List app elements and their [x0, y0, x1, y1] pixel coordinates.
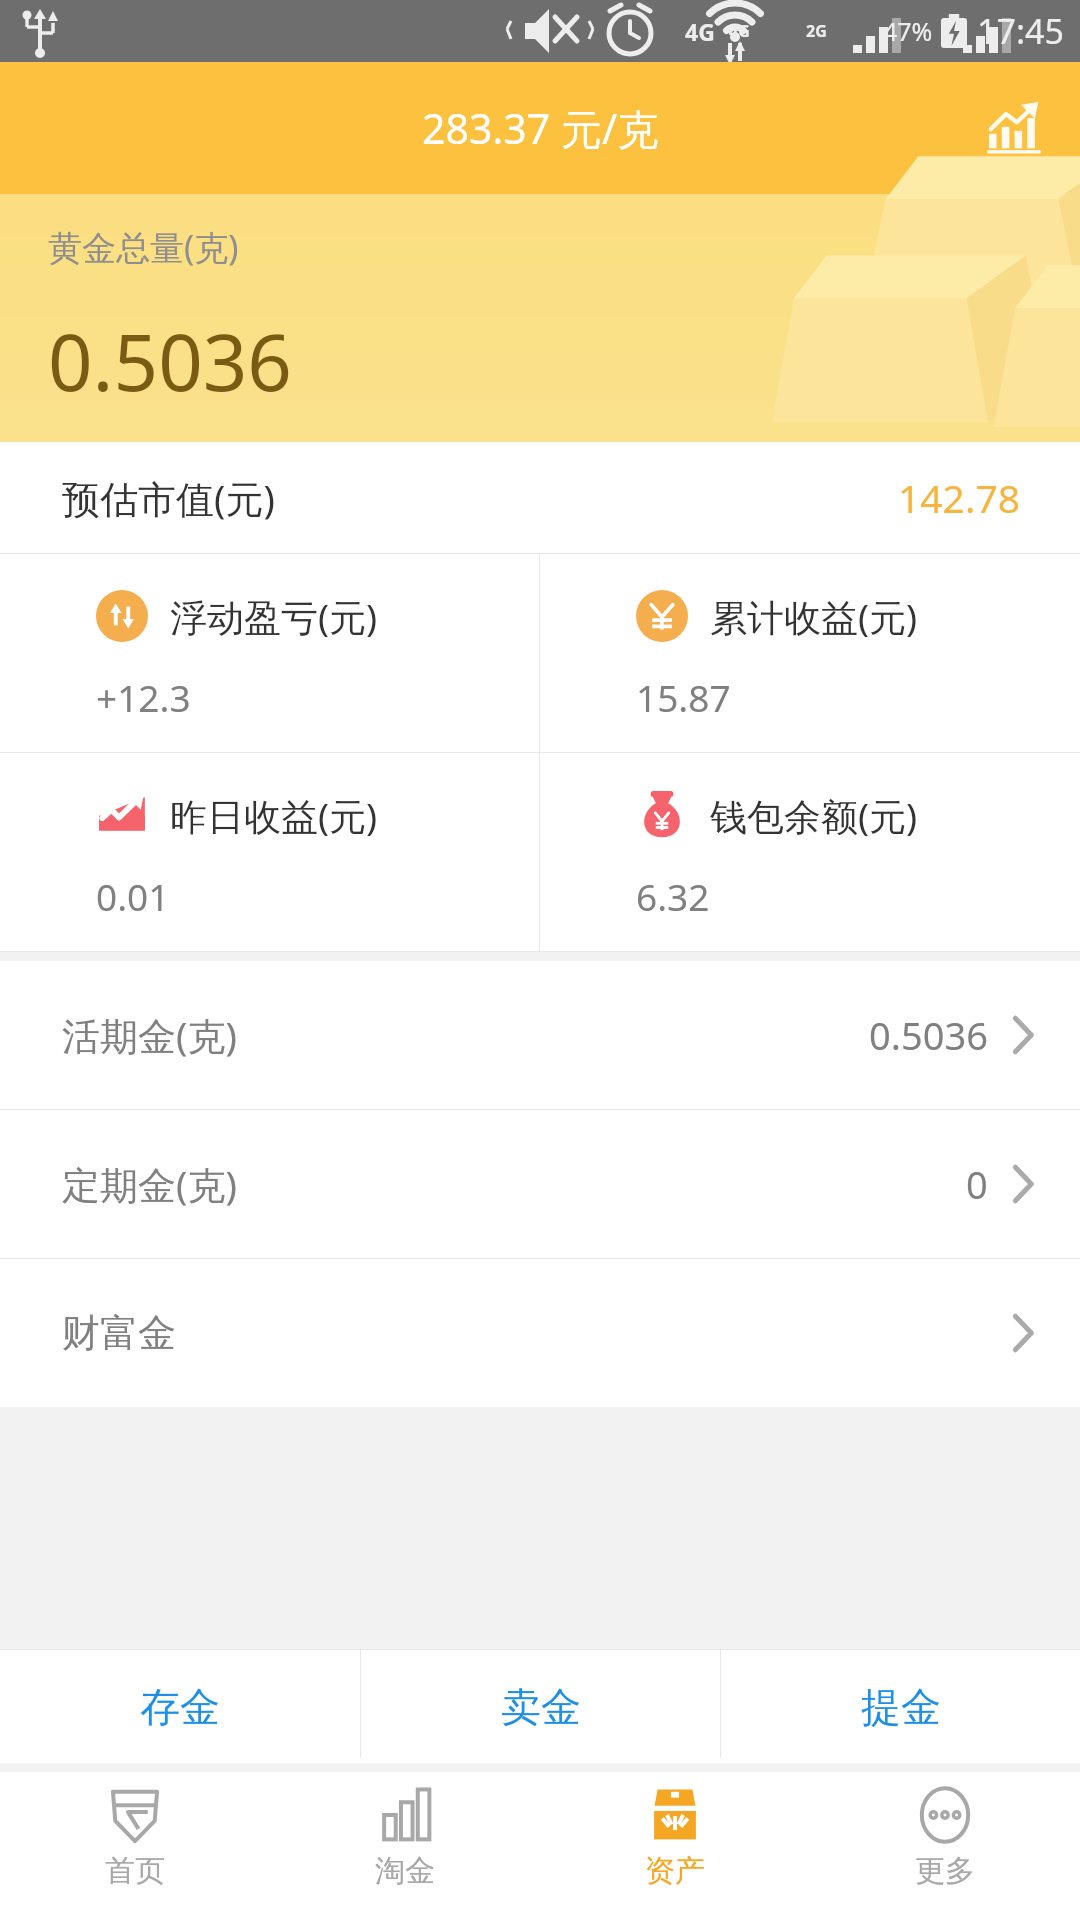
button[interactable]: 昨日收益(元) [0, 753, 539, 951]
button[interactable]: 财富金 [0, 1259, 1080, 1407]
button[interactable]: 活期金(克) [0, 961, 1080, 1109]
staticText: 4G [685, 16, 715, 47]
staticText: 财富金 [62, 1309, 176, 1357]
button[interactable]: 预估市值(元) [0, 442, 1080, 553]
staticText: 累计收益(元) [710, 591, 918, 642]
button[interactable]: 首页 [0, 1772, 270, 1920]
staticText: 6.32 [636, 871, 710, 921]
staticText: 15.87 [636, 672, 731, 722]
staticText: 4G [729, 20, 750, 42]
staticText: 0.5036 [48, 308, 292, 414]
staticText: 钱包余额(元) [710, 790, 918, 841]
staticText: 283.37 元/克 [422, 100, 659, 156]
staticText: 0.01 [96, 871, 170, 921]
staticText: 淘金 [375, 1852, 435, 1890]
staticText: 提金 [861, 1682, 941, 1732]
staticText: 0.5036 [869, 1009, 988, 1061]
staticText: +12.3 [96, 672, 191, 722]
button[interactable]: 卖金 [361, 1650, 720, 1763]
staticText: 卖金 [501, 1682, 581, 1732]
staticText: 47% [883, 14, 933, 48]
button[interactable]: 更多 [810, 1772, 1080, 1920]
staticText: 资产 [645, 1852, 705, 1890]
staticText: 昨日收益(元) [170, 790, 378, 841]
button[interactable]: 行情走势 [974, 88, 1054, 168]
button[interactable]: 提金 [721, 1650, 1080, 1763]
staticText: 首页 [105, 1852, 165, 1890]
staticText: 142.78 [898, 471, 1020, 524]
staticText: 黄金总量(克) [48, 224, 239, 270]
staticText: 预估市值(元) [62, 472, 275, 524]
staticText: 17:45 [977, 8, 1064, 54]
staticText: 2G [806, 20, 827, 42]
staticText: 更多 [915, 1852, 975, 1890]
button[interactable]: 累计收益(元) [540, 554, 1080, 752]
button[interactable]: 淘金 [270, 1772, 540, 1920]
staticText: 定期金(克) [62, 1158, 237, 1210]
staticText: 浮动盈亏(元) [170, 591, 378, 642]
staticText: 活期金(克) [62, 1009, 237, 1061]
staticText: 存金 [140, 1682, 220, 1732]
staticText: 0 [966, 1158, 988, 1210]
button[interactable]: 资产 [540, 1772, 810, 1920]
button[interactable]: 浮动盈亏(元) [0, 554, 539, 752]
button[interactable]: 定期金(克) [0, 1110, 1080, 1258]
button[interactable]: 存金 [0, 1650, 360, 1763]
button[interactable]: 钱包余额(元) [540, 753, 1080, 951]
